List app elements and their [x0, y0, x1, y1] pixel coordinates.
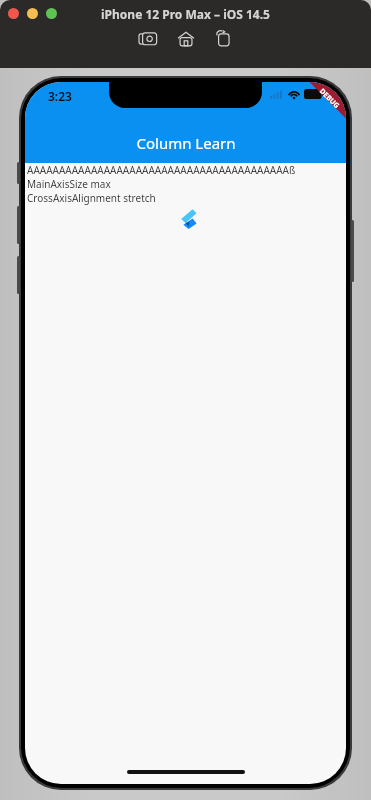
staticText: iPhone 12 Pro Max – iOS 14.5: [101, 6, 270, 22]
staticText: AAAAAAAAAAAAAAAAAAAAAAAAAAAAAAAAAAAAAAAA…: [27, 163, 346, 177]
button[interactable]: Close: [8, 8, 19, 19]
staticText: 3:23: [48, 88, 72, 104]
staticText: Column Learn: [136, 133, 236, 153]
button[interactable]: Screenshot: [137, 28, 159, 50]
button[interactable]: Rotate: [213, 28, 235, 50]
button[interactable]: Home: [175, 28, 197, 50]
staticText: CrossAxisAlignment stretch: [27, 191, 346, 205]
other: Flutter logo: [175, 208, 197, 230]
button[interactable]: Zoom: [46, 8, 57, 19]
button[interactable]: Minimize: [27, 8, 38, 19]
staticText: DEBUG: [317, 87, 342, 111]
staticText: MainAxisSize max: [27, 177, 346, 191]
